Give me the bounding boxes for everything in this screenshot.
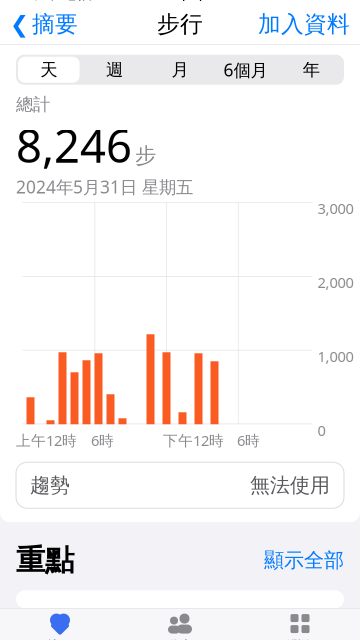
button[interactable]: ❮ bbox=[0, 4, 88, 44]
staticText: 加入資料 bbox=[258, 10, 350, 38]
staticText: 瀏覽 bbox=[287, 638, 313, 640]
staticText: 2,000 bbox=[317, 272, 353, 292]
staticText: 3,000 bbox=[317, 198, 353, 218]
staticText: 分享 bbox=[167, 638, 193, 640]
button[interactable]: 加入資料 bbox=[248, 4, 360, 44]
staticText: 天 bbox=[40, 59, 57, 80]
staticText: 趨勢 bbox=[30, 473, 70, 498]
staticText: 下午12時 bbox=[163, 430, 224, 450]
staticText: 1,000 bbox=[317, 346, 353, 366]
staticText: 月 bbox=[171, 59, 188, 80]
staticText: 中華電信 bbox=[28, 0, 92, 3]
button[interactable]: 月 bbox=[147, 55, 213, 85]
staticText: 週 bbox=[106, 59, 123, 80]
button[interactable]: 週 bbox=[82, 55, 147, 85]
staticText: 0 bbox=[317, 420, 325, 440]
staticText: 6時 bbox=[237, 430, 260, 450]
button[interactable]: 瀏覽 bbox=[240, 609, 360, 640]
staticText: 下午 9:17 bbox=[176, 0, 243, 4]
staticText: 無法使用 bbox=[250, 473, 330, 498]
staticText: 8,246 bbox=[16, 115, 132, 175]
button[interactable]: 摘要 bbox=[0, 609, 120, 640]
button[interactable]: 分享 bbox=[120, 609, 240, 640]
button[interactable]: 年 bbox=[278, 55, 344, 85]
staticText: 重點 bbox=[16, 542, 74, 578]
button[interactable]: 趨勢 bbox=[0, 462, 360, 508]
staticText: 6時 bbox=[91, 430, 114, 450]
staticText: 6個月 bbox=[224, 58, 268, 81]
staticText: 步行 bbox=[157, 10, 203, 38]
staticText: 上午12時 bbox=[16, 430, 77, 450]
staticText: ❮ bbox=[10, 11, 29, 37]
staticText: 摘要 bbox=[47, 638, 73, 640]
staticText: 年 bbox=[303, 59, 320, 80]
button[interactable]: 顯示全部 bbox=[264, 548, 344, 573]
staticText: 步 bbox=[135, 142, 156, 169]
staticText: 總計 bbox=[16, 94, 50, 115]
button[interactable]: 6個月 bbox=[213, 55, 278, 85]
staticText: 顯示全部 bbox=[264, 548, 344, 573]
staticText: 摘要 bbox=[32, 10, 78, 38]
button[interactable]: 天 bbox=[16, 55, 82, 85]
staticText: 2024年5月31日 星期五 bbox=[16, 175, 193, 198]
